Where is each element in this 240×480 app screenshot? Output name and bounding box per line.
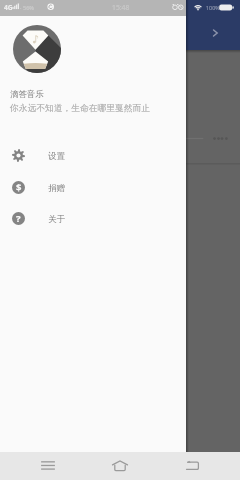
staticText: 关于 xyxy=(48,214,65,225)
button[interactable]: $ xyxy=(0,172,186,203)
staticText: ? xyxy=(16,212,21,225)
staticText: 滴答音乐 xyxy=(10,89,44,100)
staticText: 你永远不知道，生命在哪里戛然而止 xyxy=(10,103,150,114)
button[interactable]: Back xyxy=(176,452,208,480)
staticText: $ xyxy=(16,181,22,194)
button[interactable]: 设置 xyxy=(0,140,186,171)
button[interactable]: Home xyxy=(104,452,136,480)
staticText: · 56% xyxy=(20,4,35,12)
button[interactable]: Recent apps xyxy=(32,452,64,480)
staticText: 4G xyxy=(4,3,13,12)
staticText: 100% xyxy=(206,4,220,11)
staticText: 捐赠 xyxy=(48,183,65,194)
staticText: 15:48 xyxy=(112,3,130,12)
staticText: 设置 xyxy=(48,151,65,162)
button[interactable]: ? xyxy=(0,203,186,234)
other: Toolbar xyxy=(0,0,240,50)
